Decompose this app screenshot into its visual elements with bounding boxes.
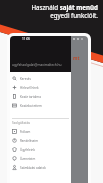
- staticText: egyedi funkcióit.: [50, 11, 98, 19]
- button[interactable]: Kosár tartalma: [10, 92, 71, 101]
- button[interactable]: Hírlevél hírek: [10, 83, 71, 92]
- button[interactable]: Üzeneteim: [10, 154, 71, 163]
- button[interactable]: Keresés: [10, 74, 71, 83]
- staticText: Keresés: [20, 77, 31, 81]
- staticText: Rendeléseim: [20, 139, 39, 143]
- button[interactable]: Ügyfeleink: [10, 145, 71, 154]
- staticText: Hírlevél hírek: [20, 86, 39, 90]
- staticText: Szolgáltatás: [12, 121, 30, 125]
- staticText: Fiókom: [20, 130, 31, 134]
- staticText: 11:06: [22, 37, 31, 41]
- staticText: Üzeneteim: [20, 157, 36, 161]
- staticText: mt: [73, 55, 80, 61]
- staticText: Kosárba tettem: [20, 104, 42, 108]
- staticText: Ügyfeleink: [20, 148, 35, 152]
- staticText: Kosár tartalma: [20, 95, 41, 99]
- staticText: Használd saját menüd: [31, 3, 98, 11]
- button[interactable]: Kosárba tettem: [10, 101, 71, 110]
- staticText: ugyfelszolgalat@maximaltech.hu: [12, 63, 62, 67]
- button[interactable]: Számlázási adatok: [10, 163, 71, 172]
- button[interactable]: Fiókom: [10, 127, 71, 136]
- button[interactable]: Rendeléseim: [10, 136, 71, 145]
- staticText: Számlázási adatok: [20, 166, 46, 170]
